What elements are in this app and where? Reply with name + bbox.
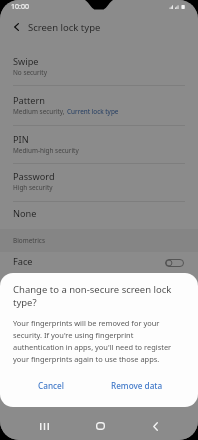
staticText: Current lock type [67, 107, 119, 116]
button[interactable]: Password [0, 163, 198, 200]
staticText: Face [13, 255, 33, 268]
button[interactable]: Pattern [0, 86, 198, 125]
staticText: None [13, 207, 37, 220]
button[interactable]: Remove data [106, 374, 168, 396]
staticText: Your fingerprints will be removed for yo… [13, 318, 185, 365]
staticText: Swipe [13, 55, 39, 68]
button[interactable]: Cancel [24, 374, 78, 396]
staticText: Remove data [111, 380, 163, 391]
staticText: Cancel [38, 380, 64, 391]
button[interactable]: Recent apps [29, 411, 59, 440]
staticText: Password [13, 170, 55, 183]
button[interactable]: Face [0, 252, 198, 273]
button[interactable]: None [0, 202, 198, 226]
staticText: Biometrics [13, 236, 45, 245]
button[interactable]: Face recognition switch [165, 259, 184, 267]
staticText: No security [13, 68, 47, 77]
staticText: Pattern [13, 94, 45, 107]
button[interactable]: Back [140, 411, 170, 440]
staticText: High security [13, 183, 53, 192]
staticText: PIN [13, 133, 29, 146]
staticText: Screen lock type [28, 21, 101, 34]
staticText: Change to a non-secure screen lock type? [13, 283, 185, 308]
staticText: 10:00 [11, 2, 29, 12]
button[interactable]: PIN [0, 126, 198, 163]
button[interactable]: Navigate up [0, 16, 28, 38]
staticText: Medium security, [13, 107, 67, 116]
staticText: Medium-high security [13, 146, 79, 155]
button[interactable]: Home [85, 411, 115, 440]
button[interactable]: Swipe [0, 48, 198, 86]
